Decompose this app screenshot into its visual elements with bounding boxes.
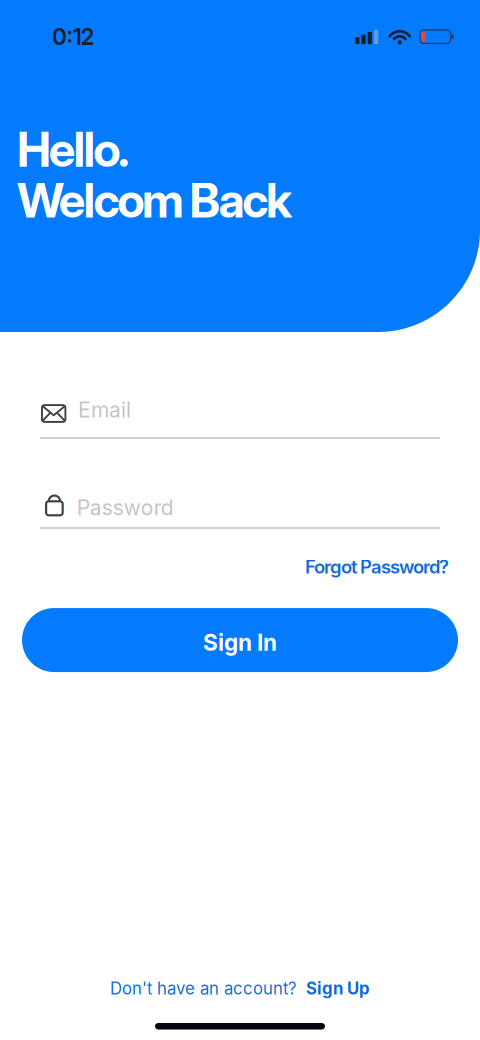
button[interactable]: Sign In	[22, 608, 458, 672]
staticText: Email	[78, 397, 131, 422]
staticText: Hello.	[17, 121, 130, 178]
staticText: Forgot Password?	[305, 556, 449, 578]
staticText: Password	[77, 495, 174, 520]
textField[interactable]: Email	[41, 397, 440, 430]
staticText: Welcom Back	[17, 172, 292, 229]
staticText: 0:12	[52, 23, 95, 50]
staticText: Sign In	[203, 629, 277, 656]
button[interactable]: Sign Up	[306, 978, 370, 998]
button[interactable]: Forgot Password?	[305, 556, 449, 578]
staticText: Don't have an account?	[110, 978, 297, 998]
secureTextField[interactable]: Password	[45, 486, 440, 520]
staticText: Sign Up	[306, 978, 370, 998]
